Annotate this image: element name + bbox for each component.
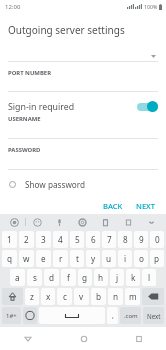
- staticText: q: [7, 253, 13, 264]
- staticText: 4: [58, 234, 63, 245]
- button[interactable]: Next: [143, 307, 164, 324]
- button[interactable]: i: [118, 250, 132, 267]
- button[interactable]: h: [94, 269, 108, 286]
- staticText: 8: [123, 234, 128, 245]
- staticText: v: [79, 291, 84, 302]
- button[interactable]: s: [27, 269, 42, 286]
- staticText: 1#+: [6, 312, 17, 320]
- button[interactable]: b: [91, 288, 106, 305]
- button[interactable]: 1#+: [2, 307, 21, 324]
- button[interactable]: w: [19, 250, 34, 267]
- staticText: PORT NUMBER: [8, 69, 51, 77]
- button[interactable]: Sign-in required: [137, 101, 158, 112]
- button[interactable]: e: [36, 250, 51, 267]
- staticText: Show password: [25, 179, 86, 190]
- staticText: u: [106, 253, 112, 264]
- button[interactable]: Security type dropdown: [0, 51, 166, 61]
- button[interactable]: Home: [56, 327, 111, 350]
- button[interactable]: p: [150, 250, 164, 267]
- button[interactable]: Clipboard: [94, 214, 117, 230]
- staticText: 7: [107, 234, 112, 245]
- staticText: 1: [7, 234, 12, 245]
- button[interactable]: 2: [19, 231, 34, 248]
- button[interactable]: Voice input: [48, 214, 71, 230]
- button[interactable]: 8: [118, 231, 132, 248]
- button[interactable]: Keyboard: [3, 214, 25, 230]
- button[interactable]: g: [78, 269, 92, 286]
- button[interactable]: 7: [102, 231, 116, 248]
- staticText: f: [67, 272, 70, 283]
- button[interactable]: Recents: [111, 327, 166, 350]
- button[interactable]: a: [10, 269, 25, 286]
- button[interactable]: 4: [53, 231, 68, 248]
- button[interactable]: v: [74, 288, 89, 305]
- staticText: 2: [24, 234, 29, 245]
- button[interactable]: Collapse keyboard: [140, 214, 163, 230]
- staticText: 100%: [144, 3, 158, 10]
- staticText: 0: [155, 234, 160, 245]
- button[interactable]: y: [86, 250, 100, 267]
- button[interactable]: Emoji: [26, 214, 48, 230]
- button[interactable]: Back: [0, 327, 56, 350]
- staticText: g: [82, 272, 88, 283]
- staticText: 9: [139, 234, 144, 245]
- button[interactable]: 6: [86, 231, 100, 248]
- button[interactable]: d: [44, 269, 59, 286]
- button[interactable]: q: [2, 250, 17, 267]
- button[interactable]: Sign-in required: [0, 100, 166, 113]
- staticText: x: [46, 291, 51, 302]
- button[interactable]: x: [41, 288, 55, 305]
- staticText: p: [154, 253, 160, 264]
- button[interactable]: z: [25, 288, 39, 305]
- staticText: a: [15, 272, 20, 283]
- staticText: 3: [41, 234, 46, 245]
- staticText: t: [76, 253, 79, 264]
- staticText: .com: [124, 312, 138, 320]
- button[interactable]: Shift: [2, 288, 23, 305]
- button[interactable]: c: [57, 288, 72, 305]
- button[interactable]: 0: [150, 231, 164, 248]
- button[interactable]: 3: [36, 231, 51, 248]
- staticText: PASSWORD: [8, 146, 41, 154]
- button[interactable]: l: [142, 269, 156, 286]
- button[interactable]: r: [53, 250, 68, 267]
- staticText: Sign-in required: [8, 101, 75, 113]
- button[interactable]: Language: [23, 307, 37, 324]
- staticText: 5: [75, 234, 80, 245]
- button[interactable]: o: [134, 250, 148, 267]
- button[interactable]: Show password: [0, 178, 166, 191]
- button[interactable]: u: [102, 250, 116, 267]
- staticText: r: [59, 253, 63, 264]
- button[interactable]: Space: [39, 307, 105, 324]
- staticText: Next: [147, 312, 161, 320]
- staticText: i: [124, 253, 127, 264]
- staticText: n: [113, 291, 119, 302]
- staticText: b: [96, 291, 102, 302]
- button[interactable]: Settings: [71, 214, 94, 230]
- staticText: BACK: [103, 201, 123, 211]
- staticText: d: [49, 272, 55, 283]
- button[interactable]: ,: [107, 307, 118, 324]
- staticText: e: [41, 253, 46, 264]
- staticText: 6: [91, 234, 96, 245]
- staticText: NEXT: [136, 201, 156, 211]
- button[interactable]: BACK: [100, 198, 126, 214]
- button[interactable]: m: [125, 288, 140, 305]
- staticText: USERNAME: [8, 115, 41, 123]
- staticText: y: [91, 253, 96, 264]
- button[interactable]: 5: [70, 231, 84, 248]
- button[interactable]: .com: [120, 307, 141, 324]
- staticText: z: [30, 291, 34, 302]
- staticText: c: [63, 291, 67, 302]
- button[interactable]: 1: [2, 231, 17, 248]
- button[interactable]: j: [110, 269, 124, 286]
- staticText: h: [98, 272, 104, 283]
- button[interactable]: NEXT: [133, 198, 159, 214]
- button[interactable]: n: [108, 288, 123, 305]
- button[interactable]: 9: [134, 231, 148, 248]
- button[interactable]: Sticker: [117, 214, 140, 230]
- button[interactable]: t: [70, 250, 84, 267]
- button[interactable]: k: [126, 269, 140, 286]
- button[interactable]: Backspace: [142, 288, 164, 305]
- button[interactable]: f: [61, 269, 76, 286]
